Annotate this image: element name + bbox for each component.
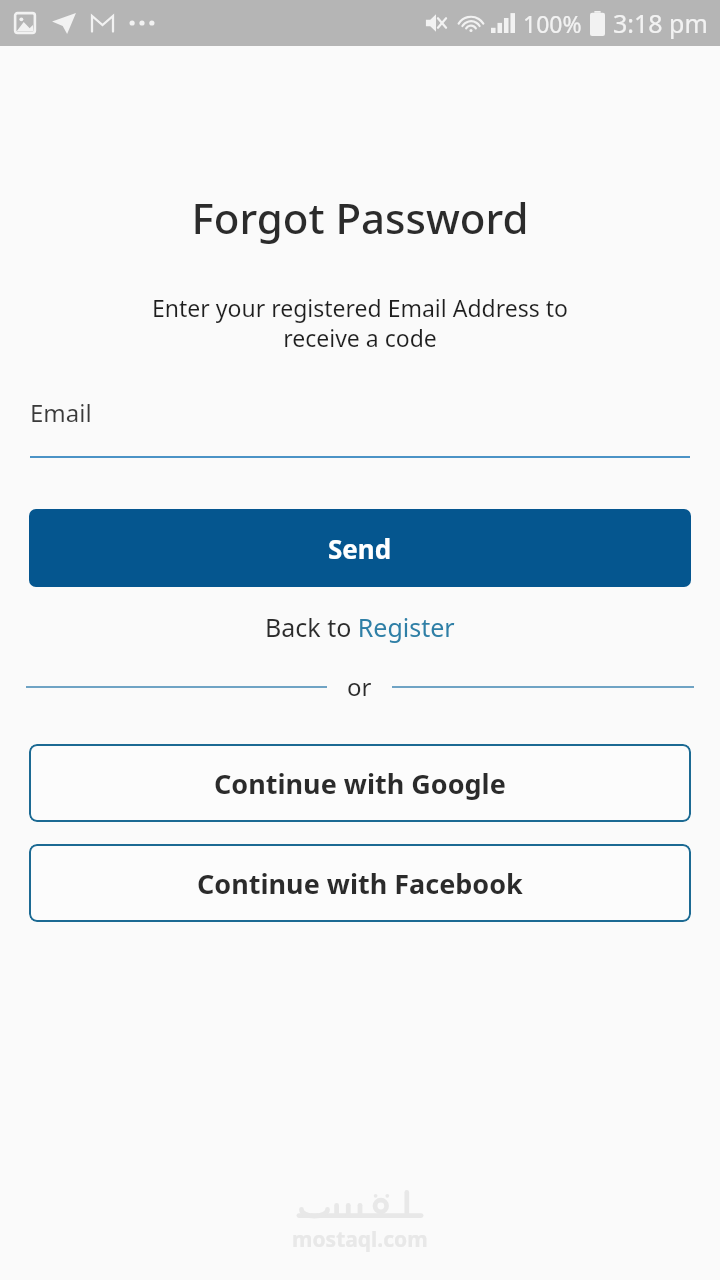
staticText: mostaql.com bbox=[292, 1225, 428, 1254]
staticText: Forgot Password bbox=[0, 189, 720, 246]
staticText: Back to Register bbox=[265, 610, 455, 644]
button[interactable]: Continue with Facebook bbox=[29, 844, 691, 922]
staticText: Continue with Google bbox=[214, 765, 506, 802]
staticText: or bbox=[347, 670, 372, 703]
staticText: Continue with Facebook bbox=[197, 865, 523, 902]
staticText: Enter your registered Email Address to r… bbox=[24, 292, 696, 353]
button[interactable]: Send bbox=[29, 509, 691, 587]
button[interactable]: Continue with Google bbox=[29, 744, 691, 822]
button[interactable]: Email bbox=[30, 396, 690, 458]
staticText: 100% bbox=[523, 8, 582, 39]
staticText: 3:18 pm bbox=[613, 6, 708, 40]
button[interactable]: Back to Register bbox=[0, 610, 720, 644]
staticText: Email bbox=[30, 396, 92, 429]
staticText: Send bbox=[328, 531, 392, 566]
